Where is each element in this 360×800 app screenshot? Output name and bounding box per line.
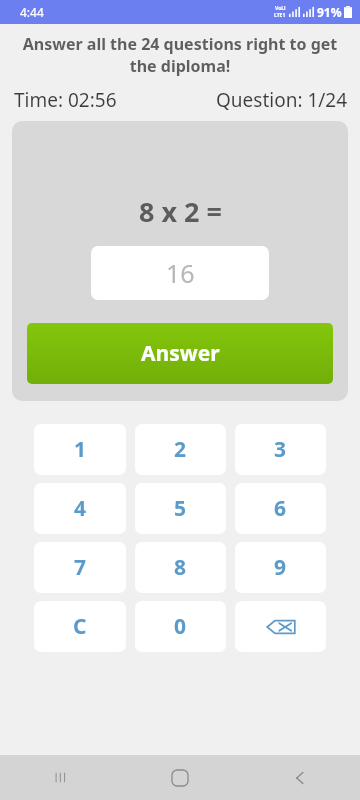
staticText: Answer [141, 339, 220, 368]
button[interactable]: 16 [91, 246, 269, 300]
button[interactable]: 0 [135, 601, 226, 652]
button[interactable]: Back [273, 755, 327, 800]
staticText: VoLl [275, 5, 286, 12]
staticText: 7 [74, 553, 87, 582]
staticText: Answer all the 24 questions right to get… [18, 33, 342, 77]
staticText: 0 [174, 612, 187, 641]
staticText: Question: 1/24 [216, 87, 348, 113]
staticText: C [73, 612, 87, 641]
staticText: 4 [74, 494, 87, 523]
button[interactable]: 4 [34, 483, 126, 534]
staticText: 3 [274, 435, 287, 464]
button[interactable]: 5 [135, 483, 226, 534]
button[interactable]: C [34, 601, 126, 652]
staticText: 91% [317, 4, 342, 20]
staticText: 8 x 2 = [139, 193, 222, 230]
staticText: 6 [274, 494, 287, 523]
button[interactable]: 8 [135, 542, 226, 593]
staticText: 4:44 [20, 4, 44, 20]
staticText: 2 [174, 435, 187, 464]
button[interactable]: Answer [27, 323, 333, 384]
staticText: 8 [174, 553, 187, 582]
staticText: LTE1 [274, 12, 286, 19]
staticText: Time: 02:56 [14, 87, 117, 113]
button[interactable]: 2 [135, 424, 226, 475]
button[interactable]: Home [153, 755, 207, 800]
button[interactable]: Recent apps [33, 755, 87, 800]
button[interactable]: 1 [34, 424, 126, 475]
button[interactable]: 7 [34, 542, 126, 593]
button[interactable]: 6 [235, 483, 326, 534]
staticText: 9 [274, 553, 287, 582]
staticText: 16 [166, 256, 195, 290]
staticText: 1 [74, 435, 87, 464]
button[interactable]: Backspace [235, 601, 326, 652]
button[interactable]: 3 [235, 424, 326, 475]
button[interactable]: 9 [235, 542, 326, 593]
staticText: 5 [174, 494, 187, 523]
